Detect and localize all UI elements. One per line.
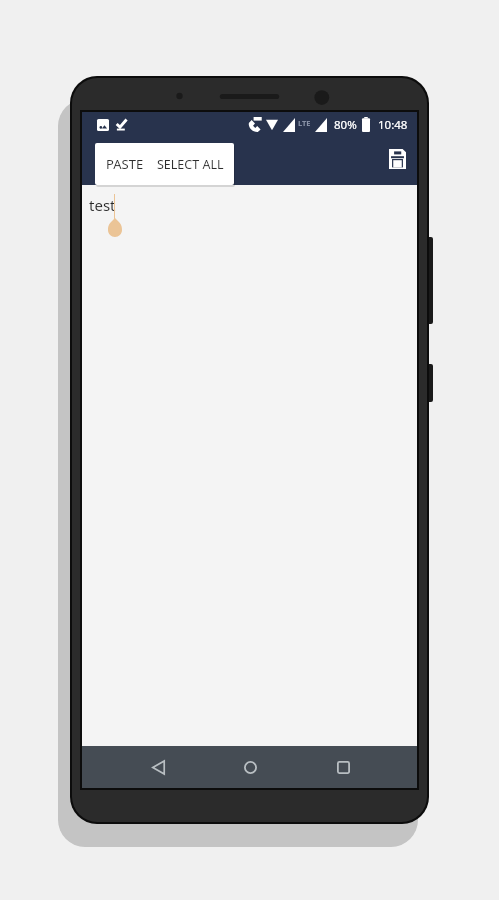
staticText: 80% xyxy=(334,117,357,133)
button[interactable]: Back xyxy=(135,746,181,788)
button[interactable]: Recents xyxy=(320,746,366,788)
button[interactable]: SELECT ALL xyxy=(154,143,234,185)
staticText: SELECT ALL xyxy=(157,156,224,173)
staticText: LTE xyxy=(298,118,311,128)
button[interactable]: PASTE xyxy=(95,143,154,185)
staticText: test xyxy=(89,195,116,215)
staticText: PASTE xyxy=(106,155,144,173)
button[interactable]: Save xyxy=(379,136,415,182)
button[interactable]: Home xyxy=(227,746,273,788)
staticText: 10:48 xyxy=(378,117,408,133)
